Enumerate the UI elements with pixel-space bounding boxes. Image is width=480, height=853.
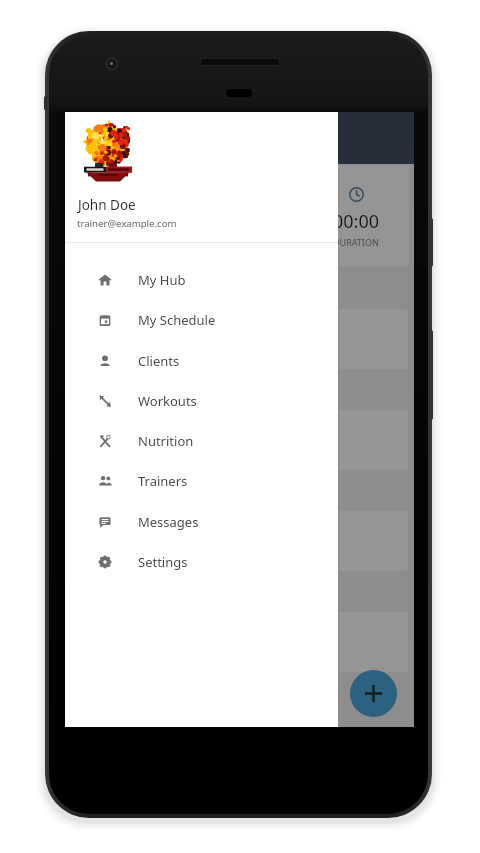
- staticText: My Schedule: [138, 311, 216, 329]
- staticText: SETS: [230, 236, 250, 248]
- staticText: trainer@example.com: [77, 217, 177, 230]
- button[interactable]: Clients: [65, 341, 338, 381]
- staticText: Nutrition: [138, 432, 194, 450]
- staticText: Trainers: [138, 472, 188, 490]
- staticText: 0: [118, 209, 129, 234]
- staticText: Settings: [138, 553, 188, 571]
- button[interactable]: Settings: [65, 542, 338, 582]
- staticText: Workouts: [138, 392, 197, 410]
- button[interactable]: Add workout: [350, 670, 397, 717]
- staticText: My Hub: [138, 271, 186, 289]
- staticText: Messages: [138, 513, 199, 531]
- staticText: 00:00: [333, 209, 380, 234]
- button[interactable]: Nutrition: [65, 421, 338, 461]
- button[interactable]: Workouts: [65, 381, 338, 421]
- staticText: EXERCISES: [101, 236, 146, 248]
- staticText: John Doe: [78, 196, 136, 214]
- button[interactable]: My Hub: [65, 260, 338, 300]
- button[interactable]: Messages: [65, 502, 338, 542]
- staticText: DURATION: [333, 236, 379, 248]
- button[interactable]: My Schedule: [65, 300, 338, 340]
- button[interactable]: Trainers: [65, 461, 338, 501]
- staticText: Clients: [138, 352, 180, 370]
